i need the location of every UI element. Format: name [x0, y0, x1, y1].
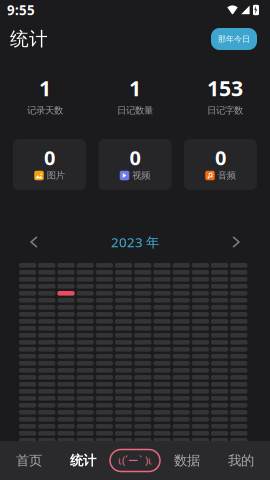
button[interactable]: 首页: [2, 441, 56, 480]
staticText: 日记数量: [117, 105, 153, 116]
staticText: 统计: [10, 27, 48, 50]
button[interactable]: 0: [184, 139, 257, 190]
staticText: 统计: [70, 452, 96, 469]
staticText: 1: [39, 74, 51, 102]
staticText: 153: [207, 74, 243, 102]
staticText: 1: [129, 74, 141, 102]
staticText: 日记字数: [207, 105, 243, 116]
staticText: ι(´ー` )ι: [118, 453, 152, 468]
staticText: 2023 年: [111, 233, 159, 251]
button[interactable]: 统计: [56, 441, 110, 480]
button[interactable]: Next year: [223, 230, 249, 254]
staticText: 视频: [132, 170, 150, 181]
button[interactable]: 我的: [214, 441, 268, 480]
staticText: 0: [129, 144, 140, 171]
button[interactable]: 0: [98, 139, 171, 190]
button[interactable]: New entry: [110, 449, 160, 471]
staticText: 我的: [228, 452, 254, 469]
staticText: 数据: [174, 452, 200, 469]
staticText: 那年今日: [218, 34, 250, 44]
staticText: 9:55: [7, 1, 35, 19]
staticText: 0: [215, 144, 226, 171]
staticText: 首页: [16, 452, 42, 469]
button[interactable]: 那年今日: [211, 28, 257, 50]
button[interactable]: Previous year: [21, 230, 47, 254]
staticText: 记录天数: [27, 105, 63, 116]
button[interactable]: 数据: [160, 441, 214, 480]
staticText: 0: [44, 144, 55, 171]
staticText: 音频: [218, 170, 236, 181]
staticText: 图片: [47, 170, 65, 181]
button[interactable]: 0: [13, 139, 86, 190]
